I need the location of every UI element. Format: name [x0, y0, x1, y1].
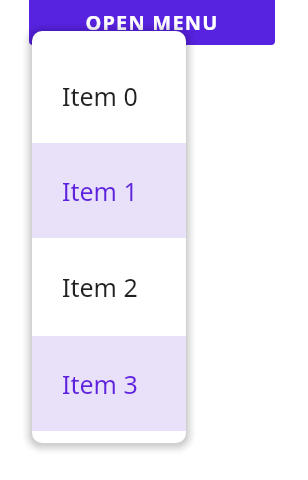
button[interactable]: OPEN MENU [29, 0, 275, 45]
staticText: Item 1 [62, 174, 138, 208]
button[interactable]: Item 3 [32, 336, 186, 431]
button[interactable]: Item 1 [32, 143, 186, 238]
button[interactable]: Item 0 [32, 48, 186, 143]
staticText: Item 3 [62, 367, 138, 401]
staticText: Item 0 [62, 79, 138, 113]
staticText: OPEN MENU [85, 9, 219, 36]
button[interactable]: Item 2 [32, 238, 186, 336]
staticText: Item 2 [62, 270, 138, 304]
